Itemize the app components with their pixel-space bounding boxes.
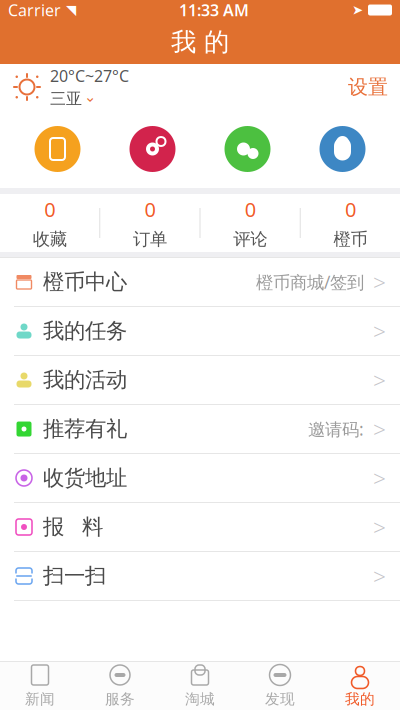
staticText: 评论 [233, 229, 267, 250]
button[interactable]: 0 [0, 187, 99, 259]
staticText: 订单 [133, 229, 167, 250]
staticText: > [373, 414, 386, 444]
staticText: 我的任务 [43, 318, 127, 344]
button[interactable]: 发现 [240, 658, 320, 710]
staticText: 橙币 [333, 229, 367, 250]
staticText: 服务 [105, 690, 135, 708]
staticText: > [373, 316, 386, 346]
staticText: > [373, 365, 386, 395]
button[interactable]: 扫一扫 [0, 552, 400, 601]
staticText: 淘城 [185, 690, 215, 708]
staticText: 橙币商城/签到 [256, 270, 364, 293]
staticText: ⌄ [84, 88, 96, 105]
staticText: Carrier [8, 0, 61, 21]
staticText: 20°C~27°C [50, 65, 129, 86]
staticText: 0 [345, 196, 356, 223]
staticText: 发现 [265, 690, 295, 708]
button[interactable]: 我的 [320, 658, 400, 710]
button[interactable]: 推荐有礼 [0, 405, 400, 454]
button[interactable]: 淘城 [160, 658, 240, 710]
button[interactable]: 0 [100, 187, 199, 259]
button[interactable]: 橙币中心 [0, 258, 400, 307]
staticText: 0 [44, 196, 55, 223]
staticText: 报 料 [43, 514, 103, 540]
staticText: ◥ [66, 2, 76, 17]
button[interactable]: 服务 [80, 658, 160, 710]
button[interactable]: 报 料 [0, 503, 400, 552]
button[interactable]: QQ登录 [319, 126, 365, 172]
button[interactable]: 收货地址 [0, 454, 400, 503]
button[interactable]: 新闻 [0, 658, 80, 710]
button[interactable]: 微博登录 [129, 126, 175, 172]
staticText: 我的活动 [43, 367, 127, 393]
staticText: 我 的 [171, 26, 229, 57]
staticText: 三亚 [50, 89, 82, 108]
button[interactable]: 0 [301, 187, 400, 259]
staticText: > [373, 512, 386, 542]
staticText: 推荐有礼 [43, 416, 127, 442]
staticText: 扫一扫 [43, 563, 106, 589]
button[interactable]: 0 [200, 187, 300, 259]
staticText: 0 [245, 196, 256, 223]
staticText: 11:33 AM [179, 0, 249, 21]
staticText: 新闻 [25, 690, 55, 708]
staticText: 我的 [345, 690, 375, 708]
button[interactable]: 手机登录 [34, 126, 80, 172]
staticText: > [373, 463, 386, 493]
staticText: 设置 [348, 75, 388, 99]
staticText: ➤ [352, 2, 363, 17]
staticText: 收藏 [33, 229, 67, 250]
staticText: > [373, 561, 386, 591]
button[interactable]: 我的活动 [0, 356, 400, 405]
button[interactable]: 我的任务 [0, 307, 400, 356]
button[interactable]: 微信登录 [224, 126, 270, 172]
button[interactable]: 20°C~27°C [0, 64, 400, 110]
staticText: 收货地址 [43, 465, 127, 491]
staticText: 橙币中心 [43, 269, 127, 295]
staticText: 0 [144, 196, 155, 223]
staticText: 邀请码: [308, 417, 364, 440]
staticText: > [373, 267, 386, 297]
